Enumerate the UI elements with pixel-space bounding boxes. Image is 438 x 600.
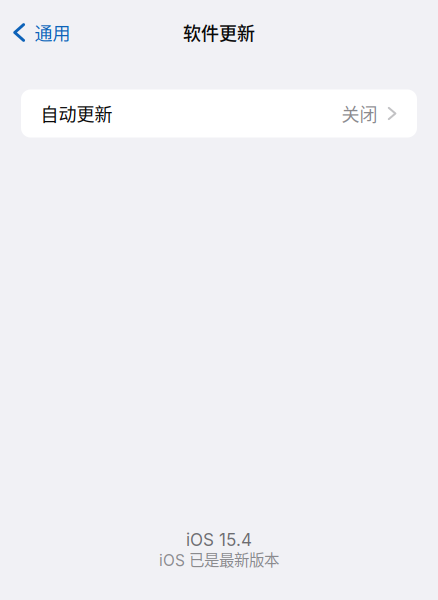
staticText: 关闭 xyxy=(341,100,377,127)
staticText: 自动更新 xyxy=(40,100,112,127)
button[interactable]: 自动更新 xyxy=(21,89,417,137)
staticText: iOS 已是最新版本 xyxy=(159,548,279,570)
staticText: 软件更新 xyxy=(183,19,255,46)
staticText: iOS 15.4 xyxy=(186,529,252,550)
button[interactable]: 通用 xyxy=(0,10,83,54)
staticText: 通用 xyxy=(35,19,71,46)
